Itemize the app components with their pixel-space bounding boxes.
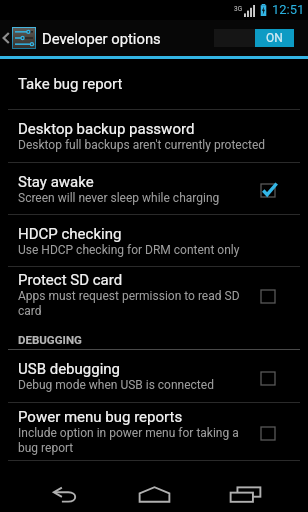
button[interactable]: Navigate up — [0, 27, 42, 49]
staticText: USB debugging — [18, 360, 121, 378]
staticText: ON — [266, 31, 283, 45]
button[interactable]: Recent apps — [200, 461, 290, 512]
button[interactable]: ON — [214, 29, 294, 47]
staticText: 3G — [234, 5, 243, 13]
staticText: Screen will never sleep while charging — [18, 191, 220, 205]
staticText: Include option in power menu for taking … — [18, 426, 254, 455]
staticText: Take bug report — [18, 75, 123, 93]
staticText: Protect SD card — [18, 271, 123, 289]
staticText: Developer options — [42, 30, 161, 47]
button[interactable]: Back — [19, 461, 109, 512]
button[interactable]: Take bug report — [0, 59, 308, 109]
staticText: Use HDCP checking for DRM content only — [18, 243, 240, 257]
staticText: 12:51 — [272, 2, 305, 17]
button[interactable]: Home — [109, 461, 199, 512]
staticText: DEBUGGING — [18, 333, 82, 346]
staticText: Apps must request permission to read SD … — [18, 289, 254, 318]
staticText: Power menu bug reports — [18, 408, 183, 426]
staticText: Stay awake — [18, 173, 94, 191]
button[interactable]: Desktop backup password — [0, 110, 308, 162]
button[interactable]: USB debugging — [0, 350, 308, 402]
staticText: Debug mode when USB is connected — [18, 378, 214, 392]
button[interactable]: HDCP checking — [0, 215, 308, 266]
button[interactable]: Protect SD card — [0, 267, 308, 322]
button[interactable]: Stay awake — [0, 163, 308, 214]
button[interactable]: Power menu bug reports — [0, 403, 308, 460]
staticText: Desktop backup password — [18, 120, 195, 138]
staticText: Desktop full backups aren't currently pr… — [18, 138, 266, 152]
staticText: HDCP checking — [18, 225, 122, 243]
